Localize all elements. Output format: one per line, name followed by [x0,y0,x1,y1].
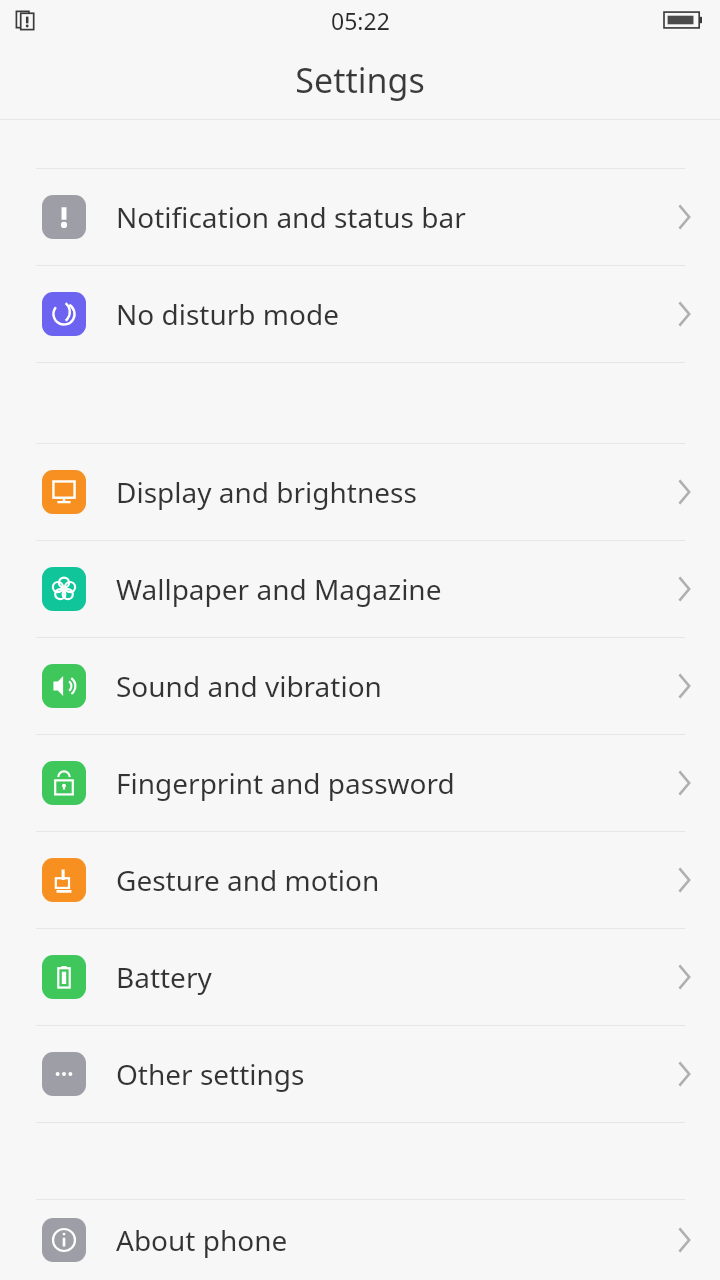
staticText: About phone [116,1221,668,1259]
button[interactable]: Fingerprint and password [0,735,720,831]
button[interactable]: Display and brightness [0,444,720,540]
other: Open Notification and status bar [668,200,702,234]
staticText: Other settings [116,1055,668,1093]
button[interactable]: Wallpaper and Magazine [0,541,720,637]
staticText: Gesture and motion [116,861,668,899]
other: Open Wallpaper and Magazine [668,572,702,606]
other: Open Display and brightness [668,475,702,509]
other: Open Other settings [668,1057,702,1091]
other: Open No disturb mode [668,297,702,331]
button[interactable]: Battery [0,929,720,1025]
staticText: Battery [116,958,668,996]
staticText: Sound and vibration [116,667,668,705]
other: Open Battery [668,960,702,994]
button[interactable]: Gesture and motion [0,832,720,928]
other: Open Gesture and motion [668,863,702,897]
button[interactable]: Other settings [0,1026,720,1122]
staticText: Display and brightness [116,473,668,511]
button[interactable]: Sound and vibration [0,638,720,734]
button[interactable]: No disturb mode [0,266,720,362]
other: Open Sound and vibration [668,669,702,703]
other: Open About phone [668,1223,702,1257]
staticText: No disturb mode [116,295,668,333]
button[interactable]: About phone [0,1200,720,1280]
staticText: Settings [295,57,425,103]
other: Open Fingerprint and password [668,766,702,800]
staticText: Fingerprint and password [116,764,668,802]
staticText: Wallpaper and Magazine [116,570,668,608]
staticText: Notification and status bar [116,198,668,236]
button[interactable]: Notification and status bar [0,169,720,265]
staticText: 05:22 [331,5,390,36]
